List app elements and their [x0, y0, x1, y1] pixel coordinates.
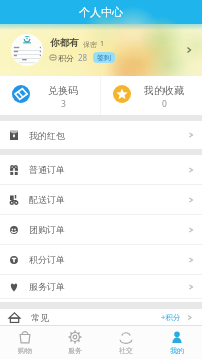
staticText: 积分订单 [29, 254, 65, 265]
staticText: 服务订单 [29, 281, 65, 292]
staticText: 我的 [170, 346, 184, 355]
staticText: 购物 [18, 346, 32, 355]
button[interactable]: 我的红包 [10, 121, 195, 149]
button[interactable]: 签到 [97, 53, 111, 62]
button[interactable]: 普通订单 [10, 155, 195, 184]
button[interactable]: 购物 [0, 326, 50, 359]
staticText: 社交 [119, 346, 133, 355]
button[interactable]: 配送订单 [10, 185, 195, 214]
button[interactable]: 我的收藏 [101, 76, 202, 115]
staticText: 服务 [68, 346, 82, 355]
staticText: 你都有 [50, 37, 79, 49]
staticText: 1 [100, 39, 105, 49]
staticText: 28 [78, 52, 88, 63]
button[interactable]: 服务订单 [10, 275, 195, 298]
button[interactable]: 社交 [100, 326, 151, 359]
staticText: 兑换码 [48, 84, 78, 97]
staticText: 个人中心 [79, 5, 123, 19]
button[interactable]: 常见 [9, 309, 194, 325]
staticText: 签到 [97, 53, 111, 62]
staticText: 普通订单 [29, 164, 65, 175]
button[interactable]: 服务 [50, 326, 100, 359]
button[interactable]: 团购订单 [10, 215, 195, 244]
button[interactable]: 我的 [151, 326, 202, 359]
staticText: +积分 [161, 312, 181, 322]
staticText: 0 [162, 98, 167, 110]
button[interactable]: 你都有 [0, 24, 202, 76]
staticText: 保密 [83, 40, 97, 49]
button[interactable]: 兑换码 [0, 76, 100, 115]
button[interactable]: 积分订单 [10, 245, 195, 274]
staticText: 常见 [31, 312, 49, 323]
staticText: 配送订单 [29, 194, 65, 205]
staticText: 3 [61, 98, 66, 110]
staticText: 团购订单 [29, 224, 65, 235]
staticText: 积分 [58, 53, 74, 63]
staticText: 我的收藏 [144, 84, 184, 97]
staticText: 我的红包 [29, 130, 65, 141]
